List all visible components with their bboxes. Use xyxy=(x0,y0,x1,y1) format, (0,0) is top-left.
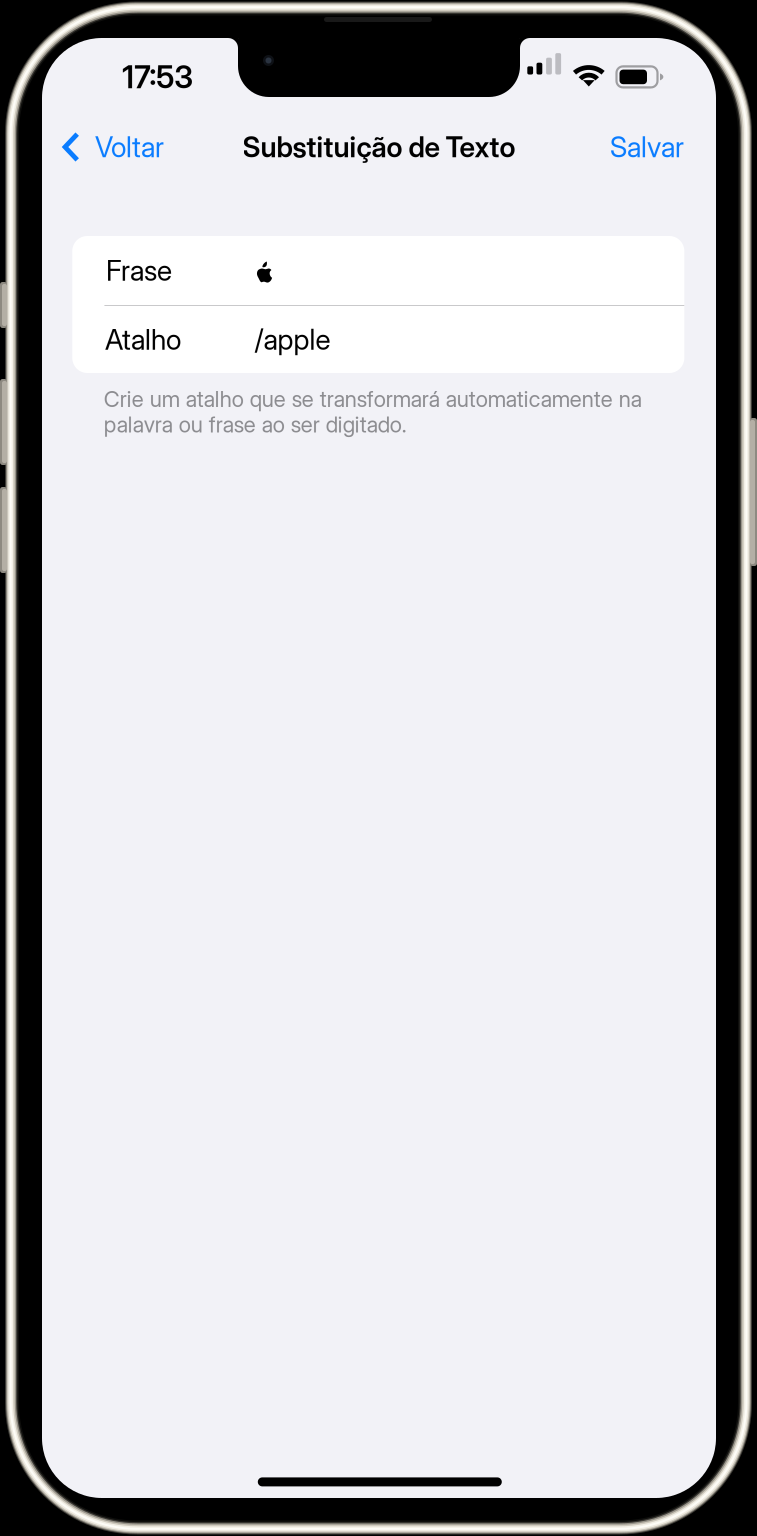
button[interactable]: Voltar xyxy=(54,108,204,186)
staticText: Frase xyxy=(106,254,172,287)
staticText: /apple xyxy=(254,323,330,356)
staticText: Substituição de Texto xyxy=(242,130,515,164)
staticText: palavra ou frase ao ser digitado. xyxy=(104,411,407,438)
staticText: 17:53 xyxy=(122,58,193,95)
button[interactable]: Atalho xyxy=(72,306,684,373)
staticText: Voltar xyxy=(95,130,164,164)
button[interactable]: Frase xyxy=(72,236,684,305)
staticText: Atalho xyxy=(105,323,181,356)
button[interactable]: Salvar xyxy=(570,108,704,186)
staticText: Salvar xyxy=(610,130,684,164)
staticText: Crie um atalho que se transformará autom… xyxy=(104,386,642,412)
